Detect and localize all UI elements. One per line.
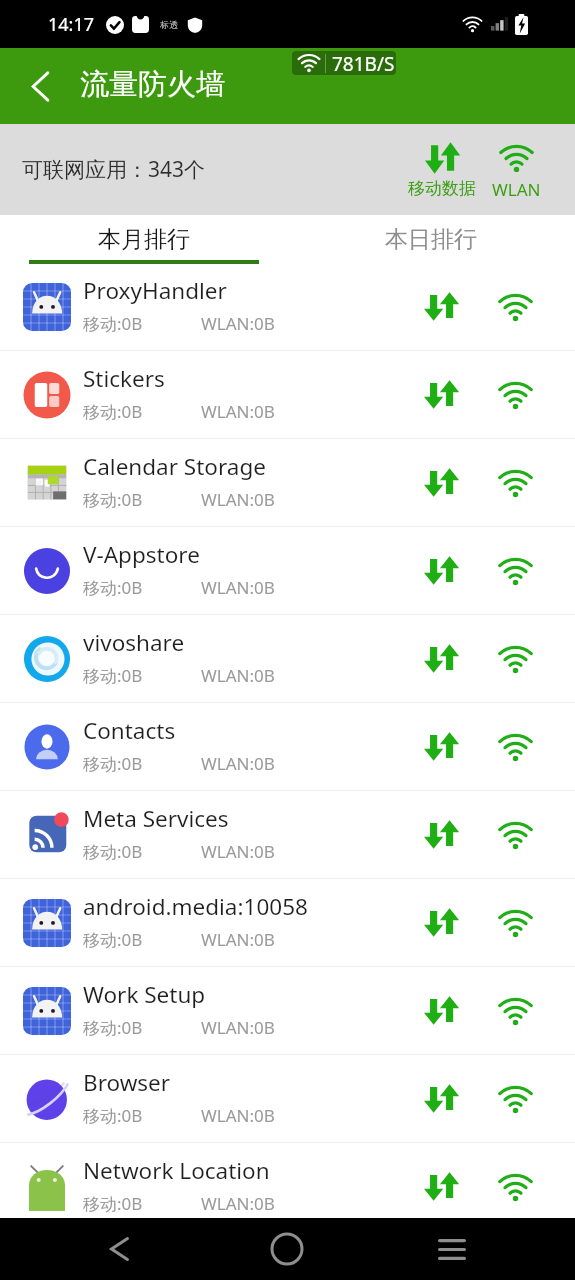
button[interactable]: Mobile data toggle (404, 1143, 478, 1230)
button[interactable]: WLAN toggle (478, 527, 552, 614)
button[interactable]: WLAN toggle (478, 703, 552, 790)
button[interactable]: WLAN toggle (478, 1143, 552, 1230)
button[interactable]: WLAN toggle (478, 263, 552, 350)
staticText: WLAN:0B (201, 1016, 275, 1039)
staticText: 移动:0B (83, 928, 143, 951)
staticText: WLAN:0B (201, 400, 275, 423)
button[interactable]: 本月排行 (0, 215, 287, 263)
staticText: Contacts (83, 715, 176, 746)
staticText: WLAN:0B (201, 1192, 275, 1215)
staticText: 移动:0B (83, 664, 143, 687)
staticText: Meta Services (83, 803, 229, 834)
button[interactable]: Mobile data toggle (404, 879, 478, 966)
staticText: vivoshare (83, 627, 185, 658)
staticText: ProxyHandler (83, 275, 227, 306)
staticText: WLAN:0B (201, 840, 275, 863)
staticText: 流量防火墙 (80, 66, 225, 103)
button[interactable]: Meta Services (0, 791, 575, 879)
staticText: 移动:0B (83, 1104, 143, 1127)
button[interactable]: Mobile data toggle (404, 351, 478, 438)
staticText: WLAN:0B (201, 312, 275, 335)
button[interactable]: Mobile data toggle (404, 703, 478, 790)
button[interactable]: vivoshare (0, 615, 575, 703)
staticText: 移动:0B (83, 752, 143, 775)
staticText: V-Appstore (83, 539, 200, 570)
button[interactable]: Mobile data toggle (404, 615, 478, 702)
button[interactable]: WLAN toggle (478, 439, 552, 526)
button[interactable]: Mobile data toggle (404, 967, 478, 1054)
staticText: WLAN (492, 178, 541, 201)
staticText: Browser (83, 1067, 171, 1098)
button[interactable]: Mobile data (404, 124, 480, 215)
button[interactable]: Mobile data toggle (404, 791, 478, 878)
staticText: 移动:0B (83, 400, 143, 423)
staticText: Network Location (83, 1155, 270, 1186)
button[interactable]: WLAN toggle (478, 1055, 552, 1142)
button[interactable]: ProxyHandler (0, 263, 575, 351)
staticText: 标透 (160, 19, 178, 30)
button[interactable]: Work Setup (0, 967, 575, 1055)
staticText: WLAN:0B (201, 488, 275, 511)
button[interactable]: Home (232, 1218, 342, 1280)
staticText: WLAN:0B (201, 1104, 275, 1127)
staticText: 移动:0B (83, 1192, 143, 1215)
staticText: 本日排行 (385, 225, 477, 254)
staticText: 移动数据 (408, 178, 476, 199)
staticText: android.media:10058 (83, 891, 308, 922)
staticText: 移动:0B (83, 312, 143, 335)
button[interactable]: Recent apps (397, 1218, 507, 1280)
staticText: 移动:0B (83, 1016, 143, 1039)
button[interactable]: WLAN toggle (478, 967, 552, 1054)
button[interactable]: Mobile data toggle (404, 439, 478, 526)
button[interactable]: 本日排行 (287, 215, 575, 263)
staticText: 本月排行 (98, 225, 190, 254)
staticText: 移动:0B (83, 576, 143, 599)
staticText: WLAN:0B (201, 752, 275, 775)
staticText: 移动:0B (83, 840, 143, 863)
button[interactable]: WLAN toggle (478, 351, 552, 438)
staticText: Work Setup (83, 979, 206, 1010)
staticText: 可联网应用：343个 (22, 155, 206, 184)
button[interactable]: Network Location (0, 1143, 575, 1231)
staticText: Stickers (83, 363, 165, 394)
button[interactable]: WLAN toggle (478, 615, 552, 702)
button[interactable]: Mobile data toggle (404, 527, 478, 614)
button[interactable]: android.media:10058 (0, 879, 575, 967)
staticText: Calendar Storage (83, 451, 266, 482)
staticText: WLAN:0B (201, 664, 275, 687)
staticText: 14:17 (48, 12, 95, 37)
staticText: WLAN:0B (201, 928, 275, 951)
button[interactable]: Back (0, 48, 76, 124)
staticText: 781B/S (332, 51, 395, 75)
button[interactable]: Mobile data toggle (404, 263, 478, 350)
staticText: 移动:0B (83, 488, 143, 511)
button[interactable]: Back (64, 1218, 174, 1280)
button[interactable]: WLAN (478, 124, 554, 215)
button[interactable]: Contacts (0, 703, 575, 791)
button[interactable]: WLAN toggle (478, 879, 552, 966)
button[interactable]: Stickers (0, 351, 575, 439)
button[interactable]: V-Appstore (0, 527, 575, 615)
button[interactable]: Network speed 781B/S (292, 51, 396, 75)
button[interactable]: WLAN toggle (478, 791, 552, 878)
button[interactable]: Browser (0, 1055, 575, 1143)
staticText: WLAN:0B (201, 576, 275, 599)
button[interactable]: Mobile data toggle (404, 1055, 478, 1142)
button[interactable]: Calendar Storage (0, 439, 575, 527)
